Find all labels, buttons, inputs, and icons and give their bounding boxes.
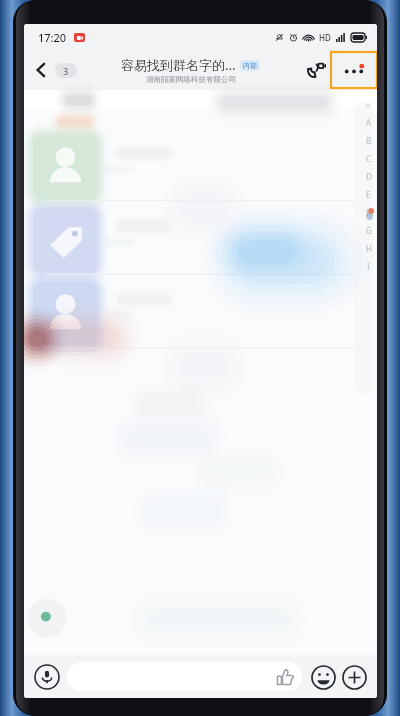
- staticText: ☆: [365, 102, 372, 110]
- button[interactable]: Add attachment: [340, 663, 368, 691]
- staticText: 3: [63, 65, 69, 77]
- staticText: G: [366, 225, 372, 236]
- staticText: B: [366, 135, 372, 146]
- button[interactable]: Video call: [301, 55, 331, 85]
- staticText: 内部: [243, 61, 257, 70]
- button[interactable]: More options: [331, 52, 377, 88]
- staticText: H: [366, 243, 372, 254]
- staticText: D: [366, 171, 372, 182]
- button[interactable]: Back: [24, 55, 83, 85]
- staticText: I: [367, 261, 370, 272]
- staticText: HD: [319, 32, 331, 43]
- staticText: 容易找到群名字的…: [121, 56, 236, 74]
- staticText: F: [366, 207, 371, 218]
- staticText: C: [366, 153, 372, 164]
- button[interactable]: Voice message: [33, 663, 61, 691]
- button[interactable]: [67, 662, 302, 691]
- staticText: 湖南丽家网络科技有限公司: [146, 75, 236, 84]
- staticText: A: [366, 117, 372, 128]
- staticText: 17:20: [38, 30, 67, 45]
- staticText: E: [366, 189, 371, 200]
- button[interactable]: Emoji: [309, 663, 337, 691]
